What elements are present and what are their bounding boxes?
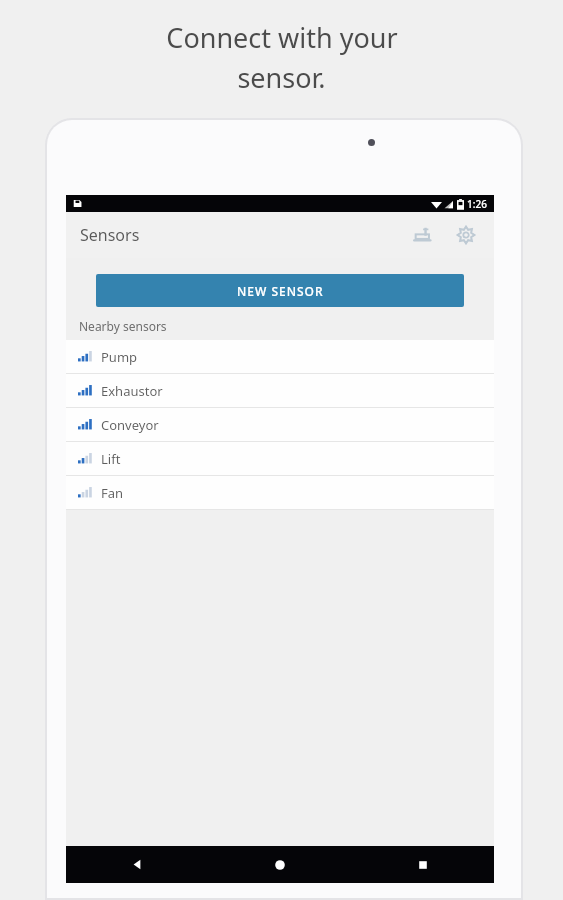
staticText: Conveyor xyxy=(101,416,159,434)
staticText: NEW SENSOR xyxy=(237,283,324,299)
button[interactable]: Pump xyxy=(66,340,494,373)
button[interactable]: Settings xyxy=(448,217,484,253)
button[interactable]: NEW SENSOR xyxy=(96,274,464,307)
button[interactable]: Sensor device xyxy=(404,217,440,253)
button[interactable]: Home xyxy=(208,846,351,883)
staticText: sensor. xyxy=(237,59,326,96)
staticText: Exhaustor xyxy=(101,382,163,400)
staticText: Connect with your xyxy=(166,19,398,56)
staticText: Sensors xyxy=(80,224,140,246)
button[interactable]: Back xyxy=(66,846,208,883)
button[interactable]: Fan xyxy=(66,476,494,509)
staticText: 1:26 xyxy=(467,197,487,211)
button[interactable]: Conveyor xyxy=(66,408,494,441)
staticText: Pump xyxy=(101,348,138,366)
button[interactable]: Lift xyxy=(66,442,494,475)
staticText: Lift xyxy=(101,450,121,468)
staticText: Nearby sensors xyxy=(79,318,167,334)
button[interactable]: Exhaustor xyxy=(66,374,494,407)
button[interactable]: Recent apps xyxy=(351,846,494,883)
staticText: Fan xyxy=(101,484,124,502)
